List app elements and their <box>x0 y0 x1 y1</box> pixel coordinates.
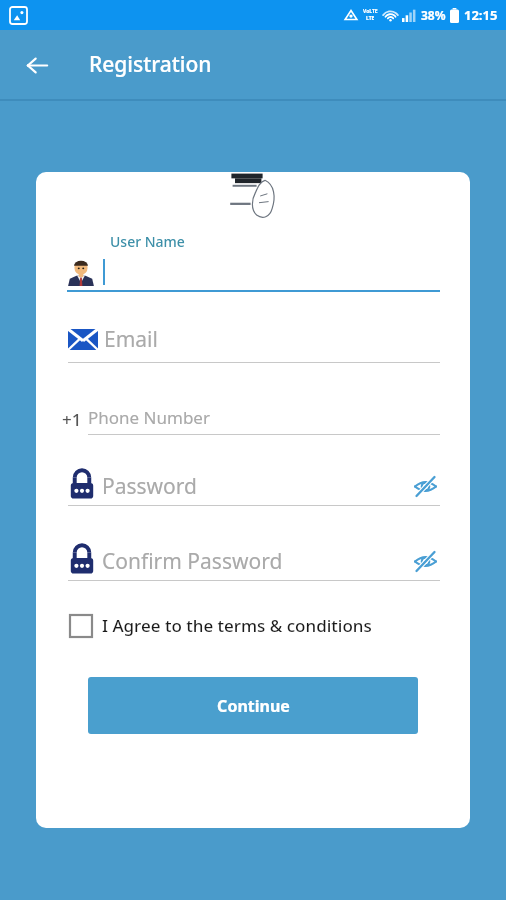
button[interactable]: Toggle password visibility <box>410 546 440 576</box>
staticText: 12:15 <box>464 6 498 24</box>
staticText: Email <box>104 325 158 354</box>
button[interactable]: I Agree to the terms & conditions <box>36 610 470 641</box>
button[interactable]: User Name <box>36 232 470 292</box>
button[interactable]: +1 <box>36 406 470 435</box>
staticText: Confirm Password <box>102 547 410 576</box>
staticText: Continue <box>217 695 290 717</box>
button[interactable]: Email <box>36 325 470 363</box>
staticText: Password <box>102 472 410 501</box>
staticText: 38% <box>421 7 446 23</box>
button[interactable]: Toggle password visibility <box>410 471 440 501</box>
staticText: Registration <box>89 50 212 79</box>
staticText: +1 <box>62 408 82 431</box>
button[interactable]: Continue <box>88 677 418 734</box>
staticText: User Name <box>110 232 185 251</box>
button[interactable]: Back <box>15 43 59 87</box>
staticText: LTE <box>366 15 375 22</box>
button[interactable]: Confirm Password <box>36 546 470 581</box>
button[interactable]: Password <box>36 471 470 506</box>
staticText: I Agree to the terms & conditions <box>102 614 372 637</box>
staticText: VoLTE <box>363 8 378 15</box>
staticText: Phone Number <box>88 406 210 429</box>
